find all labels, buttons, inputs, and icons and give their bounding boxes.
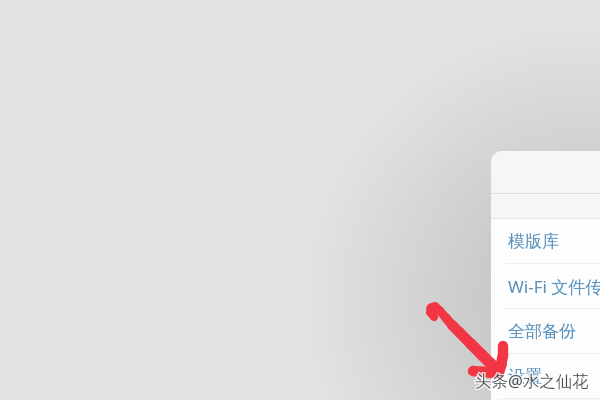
staticText: 设置 — [508, 366, 542, 387]
staticText: 模版库 — [508, 231, 559, 252]
staticText: 头条@水之仙花 — [475, 369, 589, 392]
button[interactable]: Wi-Fi 文件传输 — [491, 264, 600, 309]
button[interactable]: 设置 — [491, 354, 600, 399]
button[interactable]: 全部备份 — [491, 309, 600, 354]
staticText: Wi-Fi 文件传输 — [508, 275, 600, 298]
staticText: 头条@水之仙花 — [475, 369, 589, 392]
staticText: 全部备份 — [508, 321, 576, 342]
button[interactable]: 模版库 — [491, 219, 600, 264]
